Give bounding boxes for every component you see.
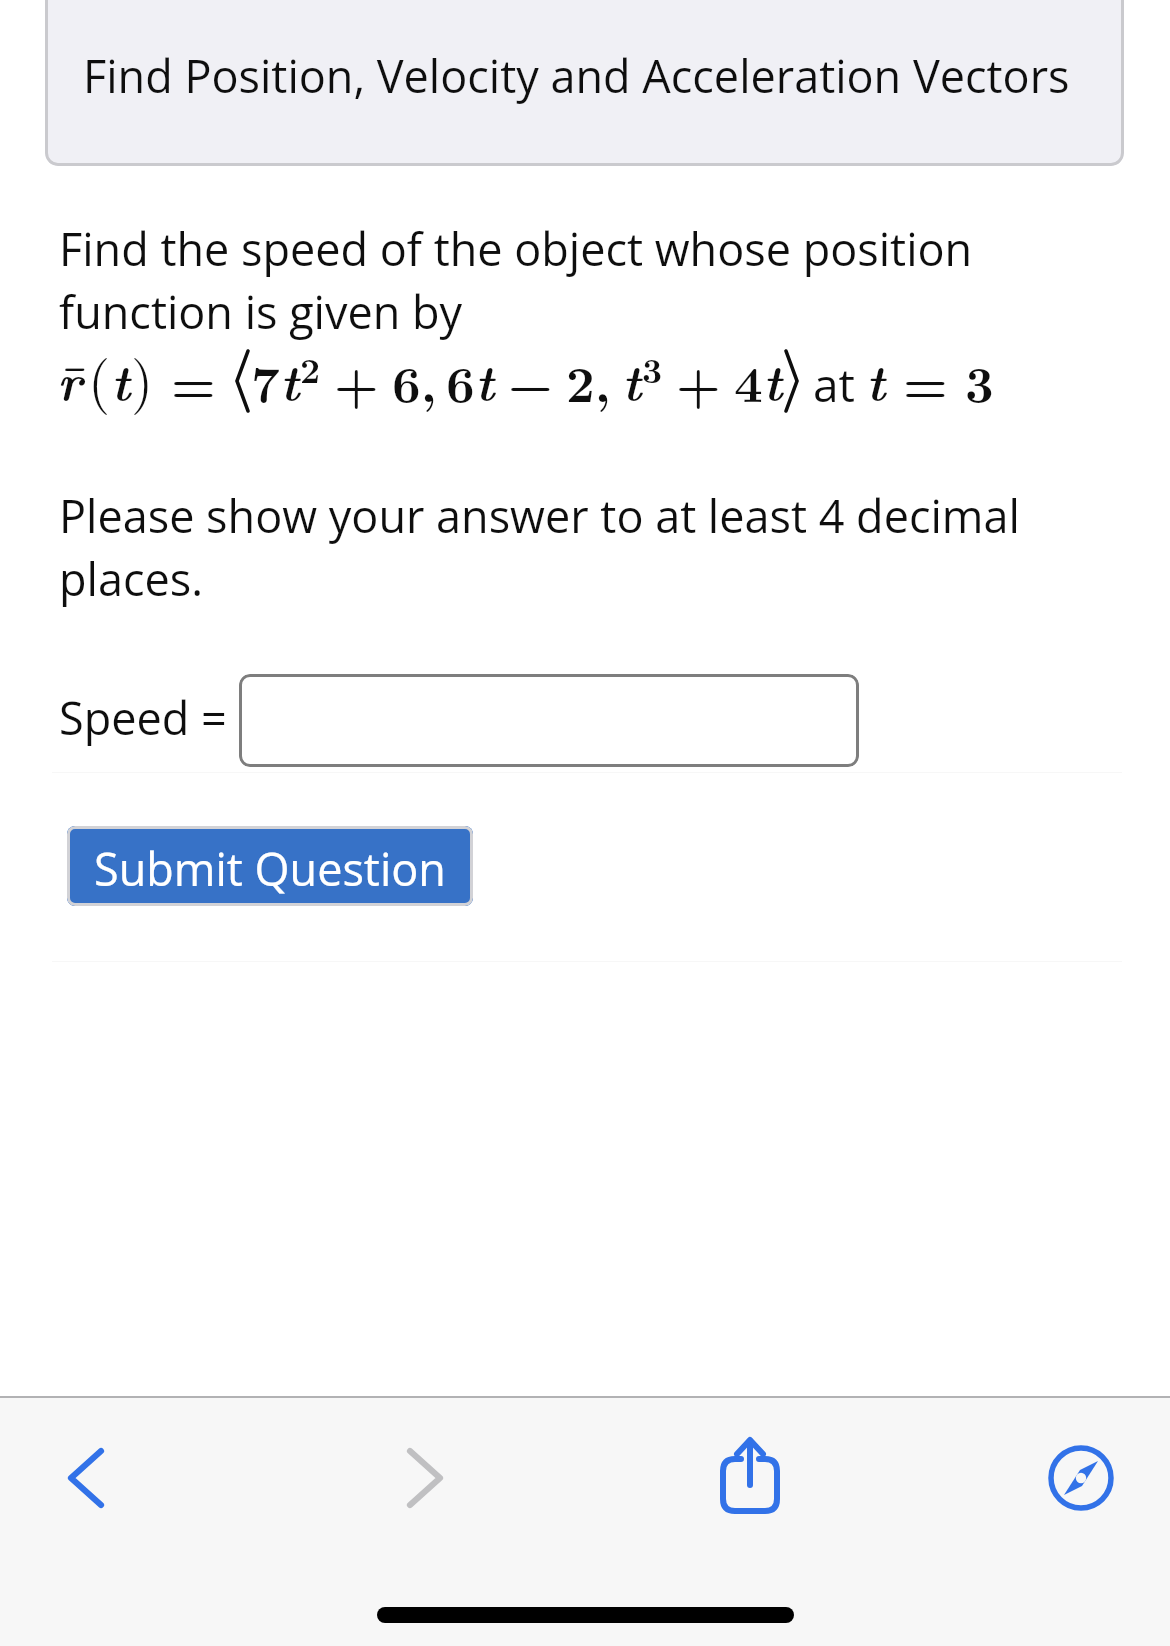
staticText: ) [131, 337, 154, 418]
staticText: 6 [446, 345, 475, 416]
staticText: Speed = [59, 687, 227, 748]
staticText: t [111, 343, 131, 416]
staticText: t [763, 343, 783, 416]
staticText: r̄ [57, 343, 83, 416]
staticText: at [813, 353, 855, 416]
staticText: Submit Question [94, 838, 446, 899]
staticText: 4 [734, 345, 763, 416]
staticText: ( [88, 337, 111, 418]
staticText: t [475, 343, 495, 416]
staticText: 3 [965, 345, 994, 416]
staticText: Find Position, Velocity and Acceleration… [83, 45, 1070, 106]
staticText: 6, [392, 345, 437, 416]
button[interactable] [239, 674, 859, 767]
staticText: = [171, 345, 216, 416]
staticText: 2, [566, 345, 611, 416]
staticText: + [676, 345, 721, 416]
staticText: t [866, 343, 886, 416]
button[interactable]: Tabs [1033, 1430, 1129, 1526]
staticText: − [508, 345, 553, 416]
staticText: 7 [251, 345, 280, 416]
button[interactable]: Find Position, Velocity and Acceleration… [45, 0, 1124, 166]
staticText: t [280, 343, 300, 416]
button[interactable]: Forward [377, 1430, 473, 1526]
staticText: = [903, 345, 948, 416]
button[interactable]: Submit Question [67, 826, 473, 906]
staticText: t [622, 343, 642, 416]
staticText: 3 [642, 343, 663, 393]
button[interactable]: Share [702, 1430, 798, 1526]
staticText: Please show your answer to at least 4 de… [59, 485, 1020, 610]
staticText: + [334, 345, 379, 416]
staticText: Find the speed of the object whose posit… [59, 218, 973, 343]
staticText: 2 [300, 343, 321, 393]
button[interactable]: Back [38, 1430, 134, 1526]
